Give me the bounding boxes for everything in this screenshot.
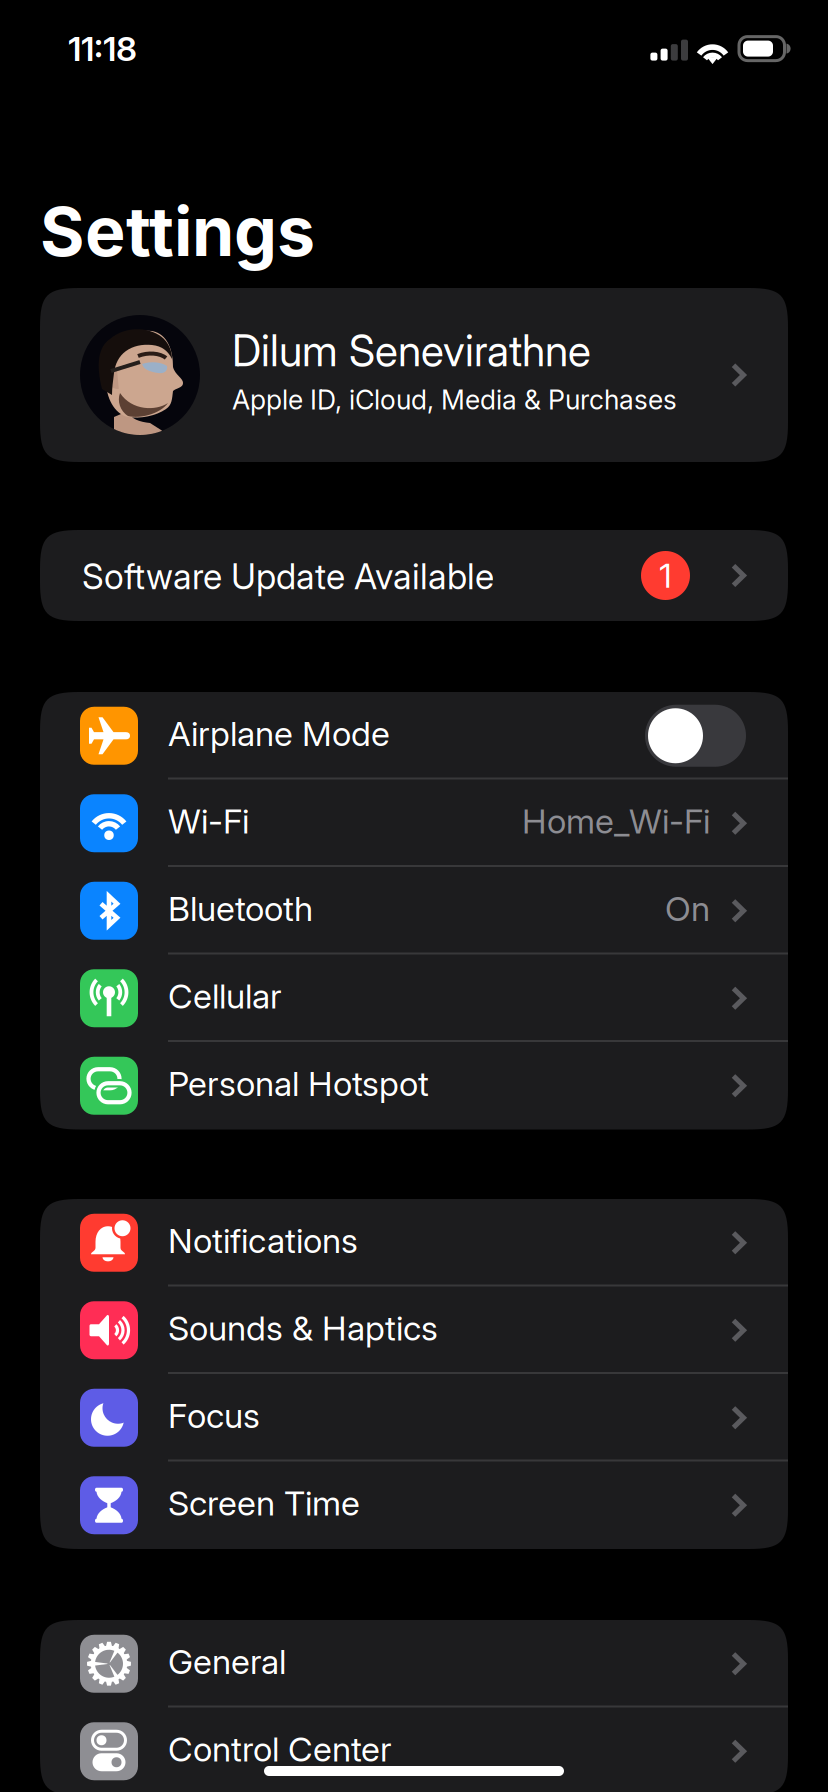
staticText: Cellular [168,976,282,1017]
button[interactable]: Control Center [40,1707,788,1792]
staticText: Personal Hotspot [168,1063,429,1104]
button[interactable]: General [40,1620,788,1707]
staticText: 11:18 [68,28,137,69]
staticText: General [168,1641,286,1682]
button[interactable]: Airplane Mode [40,692,788,779]
button[interactable]: Software Update Available [40,530,788,621]
button[interactable]: Bluetooth [40,867,788,954]
button[interactable]: Personal Hotspot [40,1042,788,1129]
staticText: Screen Time [168,1483,360,1524]
button[interactable]: Screen Time [40,1461,788,1549]
staticText: Airplane Mode [168,713,390,754]
staticText: Control Center [168,1729,392,1770]
button[interactable]: Dilum Senevirathne [40,288,788,462]
staticText: Wi-Fi [168,801,249,842]
staticText: Sounds & Haptics [168,1308,438,1349]
staticText: Bluetooth [168,888,313,929]
staticText: Software Update Available [82,555,494,597]
staticText: Notifications [168,1220,358,1261]
button[interactable]: Cellular [40,954,788,1042]
staticText: Focus [168,1395,260,1436]
staticText: On [665,888,710,929]
button[interactable]: Wi-Fi [40,779,788,867]
button[interactable]: Sounds & Haptics [40,1286,788,1374]
staticText: Settings [40,190,315,272]
staticText: 1 [659,555,672,596]
staticText: Home_Wi-Fi [522,801,710,842]
button[interactable]: Notifications [40,1199,788,1286]
staticText: Dilum Senevirathne [232,325,591,376]
staticText: Apple ID, iCloud, Media & Purchases [232,383,677,416]
button[interactable]: Focus [40,1374,788,1461]
